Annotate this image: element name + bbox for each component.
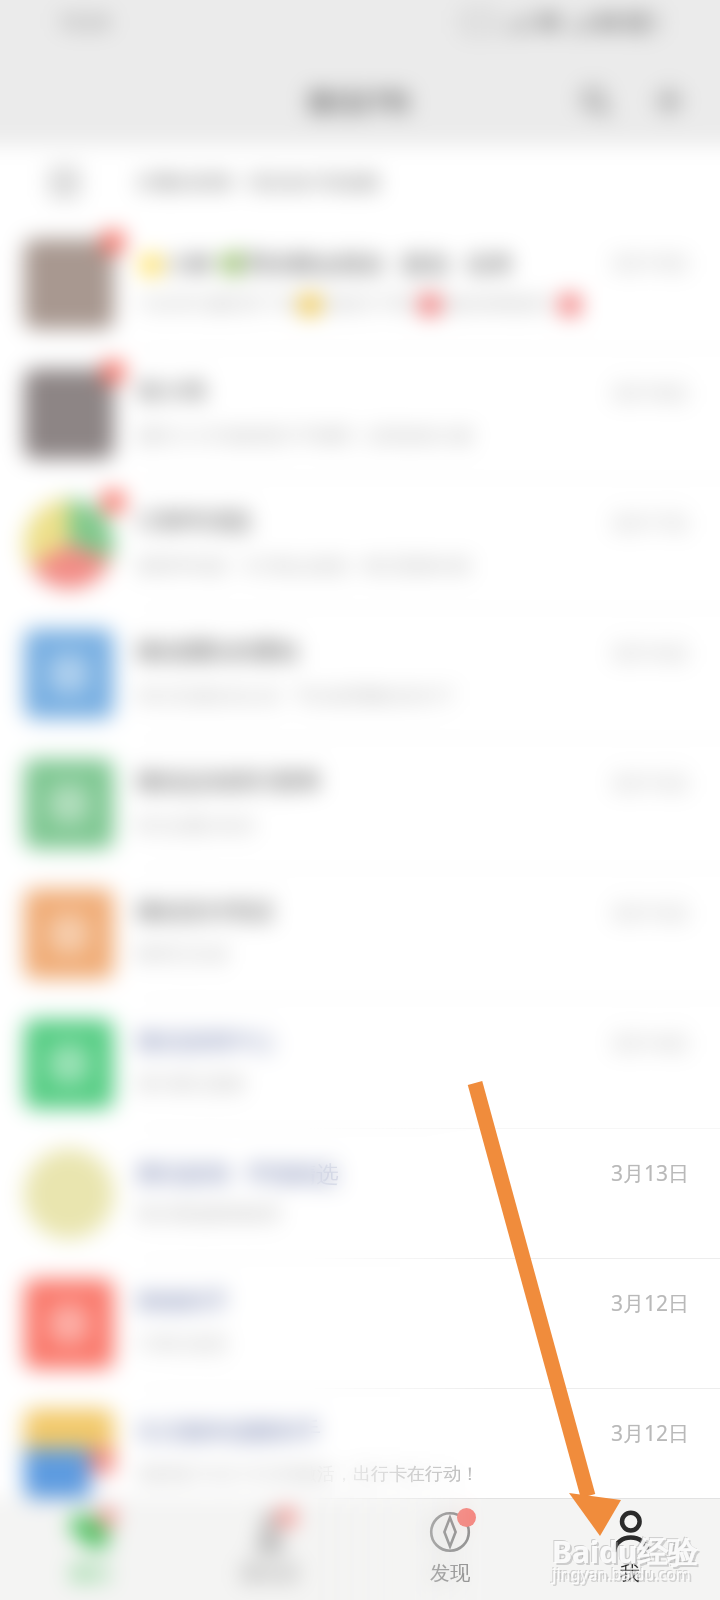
staticText: 3月12日 <box>611 1289 690 1318</box>
button[interactable]: 我 <box>540 1499 720 1600</box>
staticText: 微信运动排行榜单 <box>137 767 321 796</box>
staticText: 3月12日 <box>611 1419 690 1448</box>
button[interactable]: 通讯录 <box>180 1499 360 1600</box>
button[interactable]: 微信团队的通知 <box>0 609 720 739</box>
button[interactable]: 腾讯新闻 · 早报精选 <box>0 1129 720 1259</box>
staticText: 微信支付凭证 <box>137 897 275 926</box>
staticText: 微信 <box>70 1561 110 1586</box>
staticText: 通讯录 <box>240 1561 300 1586</box>
button[interactable]: 🌟小林 🌿周末聚会报名 · 接龙 · 名单 <box>0 219 720 349</box>
button[interactable]: 折叠的群聊 · 消息免打扰提醒 <box>0 145 720 219</box>
button[interactable]: Add <box>644 76 694 126</box>
button[interactable]: 折叠的群聊 · 消息免打扰提醒 <box>0 145 720 219</box>
staticText: 张小伟 <box>137 377 206 406</box>
button[interactable]: 订阅号消息 <box>0 479 720 609</box>
button[interactable]: 微信运动排行榜单 <box>0 739 720 869</box>
button[interactable]: 🌟小林 🌿周末聚会报名 · 接龙 · 名单 <box>0 219 720 349</box>
button[interactable]: 订阅号消息 <box>0 479 720 609</box>
staticText: 我 <box>620 1561 640 1586</box>
button[interactable]: 生活服务提醒助手 <box>0 1389 720 1519</box>
staticText: 生活服务提醒助手 <box>137 1417 321 1446</box>
staticText: 3月11日 <box>611 1549 690 1578</box>
staticText: 折叠的群聊 · 消息免打扰提醒 <box>137 169 380 195</box>
staticText: 您的电子出行卡已经激活，出行卡在行动！ <box>137 1463 479 1486</box>
button[interactable]: 微信游戏中心 <box>0 999 720 1129</box>
staticText: 微信(19) <box>307 82 409 119</box>
button[interactable]: Search <box>570 76 620 126</box>
staticText: 小伙伴们都到齐了吗好的收到了明天见啦好的吧收到 <box>137 293 551 316</box>
staticText: 3月13日 <box>611 1159 690 1188</box>
staticText: 腾讯新闻 · 早报精选 <box>137 1157 340 1188</box>
button[interactable]: 发现 <box>360 1499 540 1600</box>
button[interactable]: 购物助手 <box>0 1259 720 1389</box>
button[interactable]: 通讯录 <box>180 1499 360 1600</box>
staticText: jingyan.baidu.com <box>551 1562 690 1584</box>
button[interactable]: Search <box>570 76 620 126</box>
staticText: 微信团队的通知 <box>137 637 298 666</box>
button[interactable]: 公众号小助手 <box>0 1519 720 1600</box>
staticText: 微信游戏中心 <box>137 1027 275 1056</box>
staticText: 生活服务提醒助手 <box>137 1417 321 1446</box>
button[interactable]: 我 <box>540 1499 720 1600</box>
staticText: 小伙伴们都到齐了吗好的收到了明天见啦好的吧收到 <box>137 293 551 316</box>
button[interactable]: 张小伟 <box>0 349 720 479</box>
staticText: 微信运动排行榜单 <box>137 767 321 796</box>
button[interactable]: 微信 <box>0 1499 180 1600</box>
button[interactable]: 发现 <box>360 1499 540 1600</box>
staticText: 订阅号消息 <box>137 507 252 536</box>
button[interactable]: 微信游戏中心 <box>0 999 720 1129</box>
staticText: jingyan.baidu.com <box>552 1563 691 1585</box>
staticText: 3月13日 <box>611 1159 690 1188</box>
button[interactable]: 公众号小助手 <box>0 1519 720 1600</box>
staticText: 公众号小助手 <box>137 1547 275 1576</box>
staticText: 3月12日 <box>611 1419 690 1448</box>
button[interactable]: 微信支付凭证 <box>0 869 720 999</box>
button[interactable]: 腾讯新闻 · 早报精选 <box>0 1129 720 1259</box>
staticText: 3月12日 <box>611 1289 690 1318</box>
staticText: 10:24 <box>58 8 110 35</box>
staticText: 订阅号消息 <box>137 507 252 536</box>
staticText: 微信支付凭证 <box>137 897 275 926</box>
staticText: 购物助手 <box>137 1287 229 1316</box>
staticText: 购物助手 <box>137 1287 229 1316</box>
staticText: 张小伟 <box>137 377 206 406</box>
staticText: 微信游戏中心 <box>137 1027 275 1056</box>
button[interactable]: 微信团队的通知 <box>0 609 720 739</box>
button[interactable]: 微信 <box>0 1499 180 1600</box>
staticText: 发现 <box>430 1561 470 1586</box>
button[interactable]: Add <box>644 76 694 126</box>
staticText: Baidu经验 <box>551 1530 697 1571</box>
staticText: 微信 <box>70 1561 110 1586</box>
button[interactable]: 购物助手 <box>0 1259 720 1389</box>
button[interactable]: 微信运动排行榜单 <box>0 739 720 869</box>
staticText: Baidu经验 <box>552 1531 698 1572</box>
button[interactable]: 微信支付凭证 <box>0 869 720 999</box>
staticText: 通讯录 <box>240 1561 300 1586</box>
staticText: jingyan.baidu.com <box>554 1565 693 1587</box>
button[interactable]: 张小伟 <box>0 349 720 479</box>
staticText: 您的电子出行卡已经激活，出行卡在行动！ <box>137 1463 479 1486</box>
staticText: 微信团队的通知 <box>137 637 298 666</box>
staticText: 🌟小林 🌿周末聚会报名 · 接龙 · 名单 <box>137 247 513 278</box>
button[interactable]: 生活服务提醒助手 <box>0 1389 720 1519</box>
